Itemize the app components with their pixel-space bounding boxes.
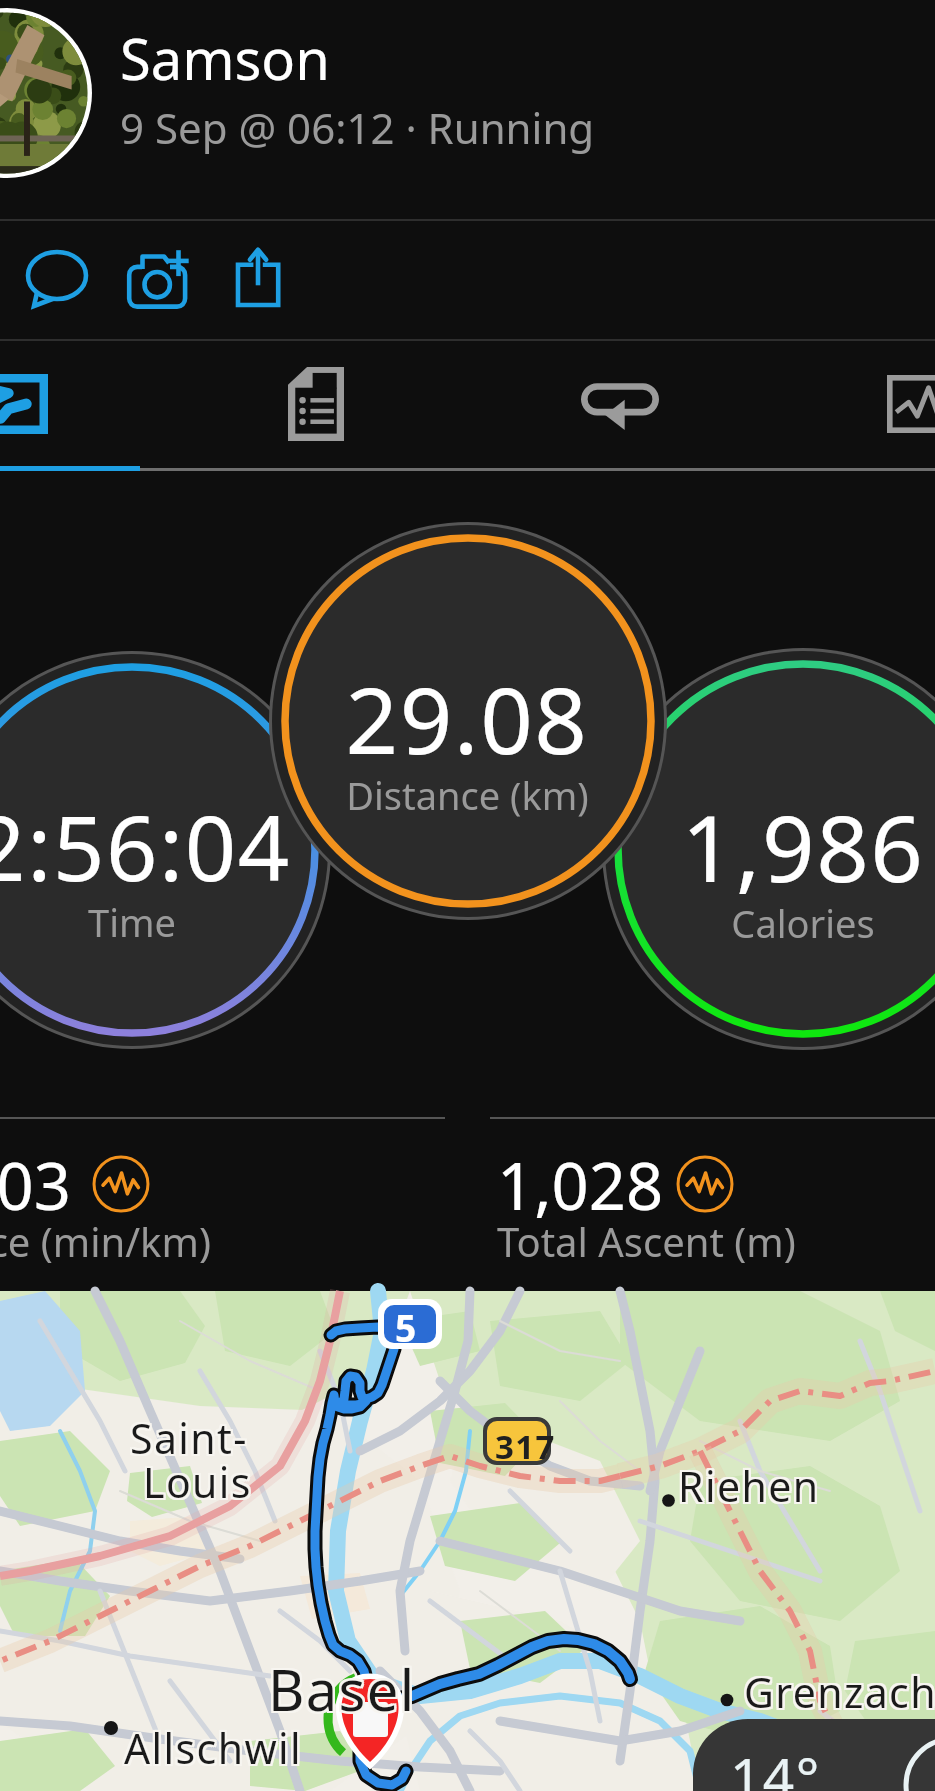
staticText: Saint- <box>130 1408 248 1464</box>
button[interactable]: Profile photo <box>0 8 92 178</box>
staticText: Riehen <box>676 1460 818 1516</box>
staticText: Grenzach <box>742 1662 935 1718</box>
button[interactable]: Map <box>0 340 165 468</box>
staticText: 29.08 <box>345 656 589 781</box>
staticText: Basel <box>268 1651 416 1727</box>
staticText: Grenzach <box>746 1664 935 1720</box>
staticText: Allschwil <box>124 1722 302 1778</box>
staticText: Basel <box>270 1649 418 1725</box>
staticText: Calories <box>731 897 875 949</box>
staticText: Louis <box>145 1456 254 1512</box>
staticText: Riehen <box>680 1458 822 1514</box>
staticText: Louis <box>143 1456 252 1512</box>
staticText: 9 Sep @ 06:12 · Running <box>120 99 595 156</box>
staticText: Louis <box>141 1456 250 1512</box>
staticText: Allschwil <box>122 1722 300 1778</box>
staticText: Basel <box>270 1653 418 1729</box>
staticText: Riehen <box>680 1460 822 1516</box>
staticText: Saint- <box>132 1412 250 1468</box>
staticText: Saint- <box>132 1408 250 1464</box>
staticText: Pace (min/km) <box>0 1214 211 1268</box>
staticText: Louis <box>143 1454 252 1510</box>
staticText: Louis <box>145 1452 254 1508</box>
staticText: Saint- <box>130 1410 248 1466</box>
staticText: Riehen <box>678 1458 820 1514</box>
staticText: Grenzach <box>742 1664 935 1720</box>
staticText: Riehen <box>678 1460 820 1516</box>
staticText: Basel <box>266 1651 414 1727</box>
staticText: Saint- <box>128 1412 246 1468</box>
staticText: 14° <box>730 1739 821 1791</box>
staticText: Grenzach <box>744 1664 935 1720</box>
staticText: Riehen <box>678 1456 820 1512</box>
staticText: Basel <box>268 1653 416 1729</box>
button[interactable]: Charts <box>769 340 935 468</box>
button[interactable]: Laps <box>469 340 771 468</box>
button[interactable]: Comment <box>12 235 102 327</box>
staticText: Distance (km) <box>346 769 589 821</box>
staticText: 5 <box>395 1302 418 1352</box>
staticText: Basel <box>266 1653 414 1729</box>
staticText: Saint- <box>128 1408 246 1464</box>
staticText: Grenzach <box>746 1666 935 1722</box>
staticText: Grenzach <box>744 1666 935 1722</box>
staticText: Grenzach <box>746 1662 935 1718</box>
staticText: 1,986 <box>681 784 925 909</box>
staticText: Louis <box>145 1454 254 1510</box>
staticText: Allschwil <box>124 1720 302 1776</box>
staticText: Riehen <box>676 1456 818 1512</box>
button[interactable]: Activity map <box>0 1291 935 1791</box>
staticText: Allschwil <box>122 1718 300 1774</box>
staticText: Allschwil <box>124 1718 302 1774</box>
staticText: Allschwil <box>126 1722 304 1778</box>
staticText: Basel <box>268 1649 416 1725</box>
button[interactable]: Splits <box>165 340 467 468</box>
staticText: Samson <box>120 20 330 96</box>
staticText: Saint- <box>132 1410 250 1466</box>
staticText: 317 <box>495 1424 556 1469</box>
staticText: Louis <box>141 1452 250 1508</box>
staticText: 1,028 <box>497 1141 664 1230</box>
staticText: Allschwil <box>122 1720 300 1776</box>
staticText: Basel <box>270 1651 418 1727</box>
staticText: Grenzach <box>744 1662 935 1718</box>
staticText: Allschwil <box>126 1718 304 1774</box>
staticText: Grenzach <box>742 1666 935 1722</box>
staticText: Saint- <box>130 1412 248 1468</box>
staticText: Total Ascent (m) <box>497 1214 796 1268</box>
staticText: 2:56:04 <box>0 785 291 908</box>
staticText: Allschwil <box>126 1720 304 1776</box>
staticText: Riehen <box>676 1458 818 1514</box>
staticText: Louis <box>141 1454 250 1510</box>
staticText: Louis <box>143 1452 252 1508</box>
staticText: Riehen <box>680 1456 822 1512</box>
staticText: Basel <box>266 1649 414 1725</box>
staticText: 5:03 <box>0 1141 71 1230</box>
button[interactable]: Share <box>213 235 303 327</box>
staticText: Time <box>88 896 176 948</box>
button[interactable]: Add photo <box>112 235 202 327</box>
staticText: Saint- <box>128 1410 246 1466</box>
